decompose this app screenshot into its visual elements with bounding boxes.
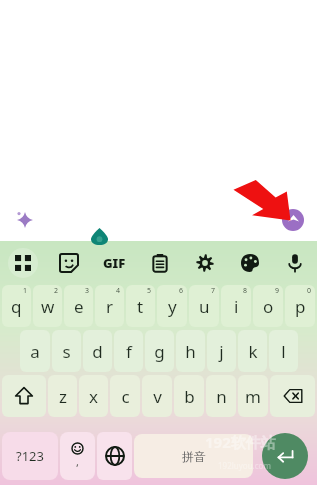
button[interactable]: 4 [95, 285, 124, 327]
staticText: g [154, 340, 165, 363]
staticText: ?123 [16, 447, 44, 465]
staticText: q [11, 295, 22, 318]
staticText: y [168, 295, 177, 318]
button[interactable] [5, 200, 312, 240]
button[interactable]: Apps [8, 248, 38, 278]
button[interactable]: 1 [2, 285, 31, 327]
staticText: r [106, 295, 114, 318]
staticText: z [59, 385, 67, 408]
staticText: u [199, 295, 210, 318]
button[interactable]: 拼音 [134, 434, 253, 478]
button[interactable]: 6 [157, 285, 187, 327]
staticText: 2 [54, 286, 59, 296]
button[interactable]: 2 [33, 285, 62, 327]
button[interactable]: Enter [262, 433, 308, 479]
button[interactable]: c [110, 375, 140, 417]
button[interactable]: Settings [182, 254, 227, 272]
staticText: 5 [147, 286, 152, 296]
button[interactable]: 7 [189, 285, 219, 327]
button[interactable]: ?123 [2, 432, 58, 480]
staticText: h [185, 340, 196, 363]
staticText: m [245, 385, 261, 408]
button[interactable]: Themes [227, 254, 272, 272]
button[interactable]: n [206, 375, 236, 417]
button[interactable]: 9 [253, 285, 283, 327]
staticText: 4 [116, 286, 121, 296]
button[interactable]: Stickers [46, 254, 92, 272]
button[interactable]: Voice input [272, 254, 317, 272]
staticText: j [219, 340, 224, 363]
staticText: 6 [179, 286, 184, 296]
button[interactable]: d [83, 330, 112, 372]
staticText: 8 [243, 286, 248, 296]
button[interactable]: Voice or AI action [282, 209, 304, 231]
button[interactable]: 0 [285, 285, 315, 327]
button[interactable]: v [142, 375, 172, 417]
staticText: c [121, 385, 130, 408]
staticText: x [89, 385, 98, 408]
button[interactable]: h [176, 330, 205, 372]
staticText: 3 [85, 286, 90, 296]
staticText: n [216, 385, 227, 408]
staticText: , [76, 454, 79, 469]
staticText: l [281, 340, 286, 363]
button[interactable]: Backspace [270, 375, 315, 417]
button[interactable]: b [174, 375, 204, 417]
staticText: 192软件站 [205, 432, 276, 452]
button[interactable]: k [238, 330, 267, 372]
staticText: s [62, 340, 71, 363]
staticText: t [137, 295, 144, 318]
button[interactable]: g [145, 330, 174, 372]
staticText: 0 [307, 286, 312, 296]
button[interactable]: GIF [92, 254, 137, 272]
staticText: i [234, 295, 239, 318]
button[interactable]: m [238, 375, 268, 417]
button[interactable]: Emoji [60, 432, 95, 480]
button[interactable]: f [114, 330, 143, 372]
button[interactable]: 3 [64, 285, 93, 327]
staticText: 7 [211, 286, 216, 296]
staticText: 9 [275, 286, 280, 296]
button[interactable]: x [79, 375, 108, 417]
button[interactable]: z [48, 375, 77, 417]
button[interactable]: 5 [126, 285, 155, 327]
staticText: GIF [103, 254, 126, 272]
button[interactable]: Change language [97, 432, 132, 480]
staticText: 1 [23, 286, 28, 296]
staticText: 拼音 [182, 449, 206, 464]
button[interactable]: s [52, 330, 81, 372]
button[interactable]: a [20, 330, 50, 372]
button[interactable]: j [207, 330, 236, 372]
staticText: e [74, 295, 84, 318]
staticText: b [184, 385, 195, 408]
staticText: o [263, 295, 274, 318]
button[interactable]: Shift [2, 375, 46, 417]
staticText: w [41, 295, 55, 318]
staticText: p [295, 295, 306, 318]
staticText: 192luyou.com [218, 460, 271, 471]
button[interactable]: l [269, 330, 298, 372]
button[interactable]: Clipboard [137, 254, 182, 272]
staticText: a [30, 340, 40, 363]
button[interactable]: 8 [221, 285, 251, 327]
staticText: v [153, 385, 162, 408]
staticText: f [126, 340, 132, 363]
staticText: k [248, 340, 258, 363]
staticText: d [92, 340, 103, 363]
